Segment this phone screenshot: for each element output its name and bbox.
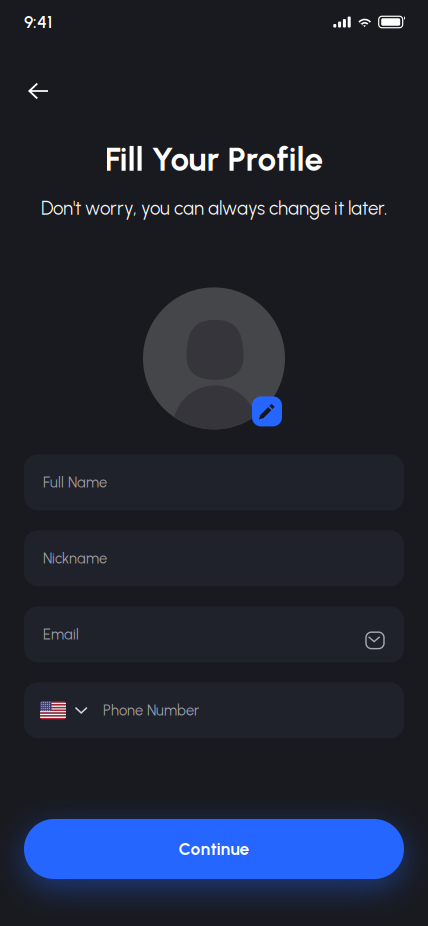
button[interactable]: Email (24, 606, 404, 662)
button[interactable]: Edit profile photo (252, 396, 282, 426)
button[interactable]: Phone Number (24, 682, 404, 738)
button[interactable]: Back (28, 69, 72, 113)
staticText: Nickname (43, 550, 107, 567)
staticText: Don't worry, you can always change it la… (41, 197, 387, 219)
staticText: Continue (178, 839, 249, 859)
staticText: 9:41 (24, 12, 52, 32)
staticText: Full Name (43, 474, 107, 491)
button[interactable]: Continue (24, 819, 404, 879)
staticText: Phone Number (103, 702, 199, 719)
button[interactable]: Full Name (24, 454, 404, 510)
button[interactable]: Nickname (24, 530, 404, 586)
staticText: Fill Your Profile (104, 139, 323, 179)
staticText: Email (43, 626, 79, 643)
